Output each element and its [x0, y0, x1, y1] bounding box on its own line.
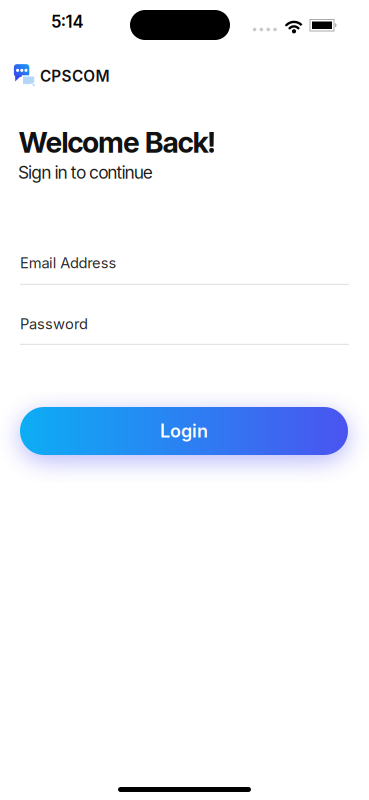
staticText: Password	[20, 315, 88, 333]
staticText: Login	[160, 420, 208, 442]
button[interactable]: Login	[20, 407, 348, 455]
staticText: Sign in to continue	[18, 162, 153, 183]
button[interactable]: Password	[20, 315, 349, 345]
staticText: Welcome Back!	[18, 125, 216, 160]
staticText: Email Address	[20, 254, 116, 272]
button[interactable]: Email Address	[20, 254, 349, 285]
staticText: 5:14	[51, 11, 83, 32]
staticText: CPSCOM	[40, 67, 109, 86]
